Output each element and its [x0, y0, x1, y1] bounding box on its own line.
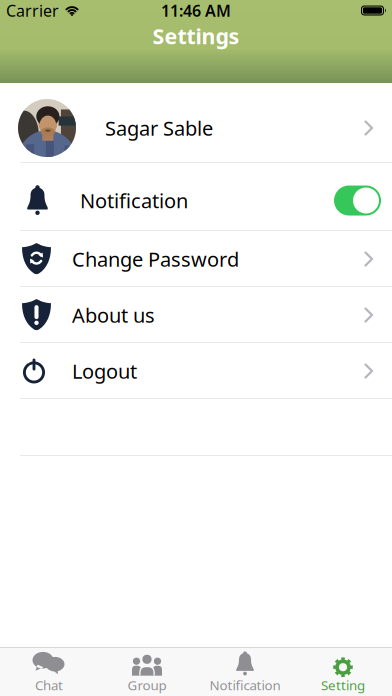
button[interactable]: Setting [294, 648, 392, 696]
button[interactable]: Group [98, 648, 196, 696]
staticText: Chat [35, 676, 63, 694]
button[interactable]: Logout [0, 343, 392, 399]
button[interactable]: About us [0, 287, 392, 343]
staticText: Carrier [6, 0, 59, 21]
button[interactable]: Notification [0, 163, 392, 231]
button[interactable]: Sagar Sable [0, 83, 392, 163]
staticText: Group [127, 676, 166, 694]
staticText: Sagar Sable [105, 115, 213, 141]
staticText: Notification [209, 676, 280, 694]
staticText: Settings [152, 22, 239, 50]
button[interactable]: Notification [334, 185, 381, 215]
button[interactable]: Change Password [0, 231, 392, 287]
staticText: Setting [321, 676, 365, 694]
staticText: Change Password [72, 246, 239, 272]
staticText: Notification [80, 187, 188, 214]
staticText: 11:46 AM [161, 0, 231, 21]
button[interactable]: Notification [196, 648, 294, 696]
button[interactable]: Chat [0, 648, 98, 696]
staticText: About us [72, 302, 155, 328]
staticText: Logout [72, 358, 137, 384]
